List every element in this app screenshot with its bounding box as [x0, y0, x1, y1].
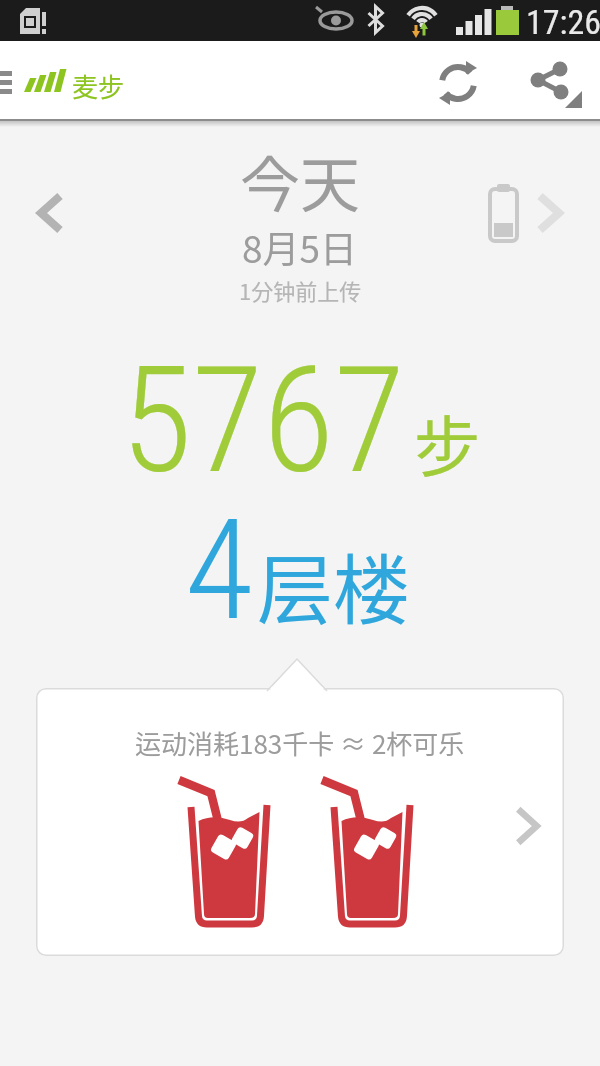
staticText: 1分钟前上传 — [239, 274, 362, 306]
staticText: 麦步 — [72, 67, 125, 105]
staticText: 8月5日 — [242, 220, 358, 274]
button[interactable] — [36, 688, 564, 956]
staticText: 17:26 — [526, 2, 600, 42]
staticText: 4 — [185, 488, 254, 652]
button[interactable] — [0, 41, 16, 119]
button[interactable] — [536, 192, 564, 234]
button[interactable] — [528, 58, 584, 110]
staticText: 今天 — [240, 137, 360, 224]
button[interactable] — [436, 61, 480, 105]
staticText: 步 — [414, 394, 480, 490]
button[interactable] — [36, 192, 64, 234]
staticText: 层楼 — [257, 530, 409, 640]
staticText: 5767 — [121, 336, 406, 507]
staticText: 运动消耗183千卡 ≈ 2杯可乐 — [135, 724, 465, 762]
